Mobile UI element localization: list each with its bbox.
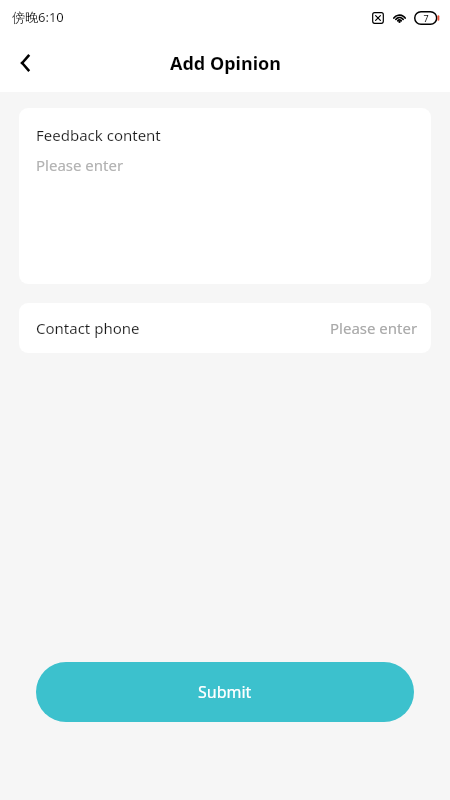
button[interactable]: Contact phone	[19, 303, 431, 353]
staticText: 7	[423, 12, 429, 24]
staticText: Add Opinion	[170, 51, 281, 76]
button[interactable]: Submit	[36, 662, 414, 722]
staticText: Submit	[198, 681, 252, 703]
button[interactable]: Feedback content	[19, 108, 431, 284]
staticText: Please enter	[36, 155, 124, 175]
staticText: 傍晚6:10	[12, 8, 64, 26]
staticText: Feedback content	[36, 125, 161, 145]
staticText: Contact phone	[36, 318, 140, 338]
staticText: Please enter	[330, 318, 418, 338]
button[interactable]: Back	[0, 37, 52, 89]
